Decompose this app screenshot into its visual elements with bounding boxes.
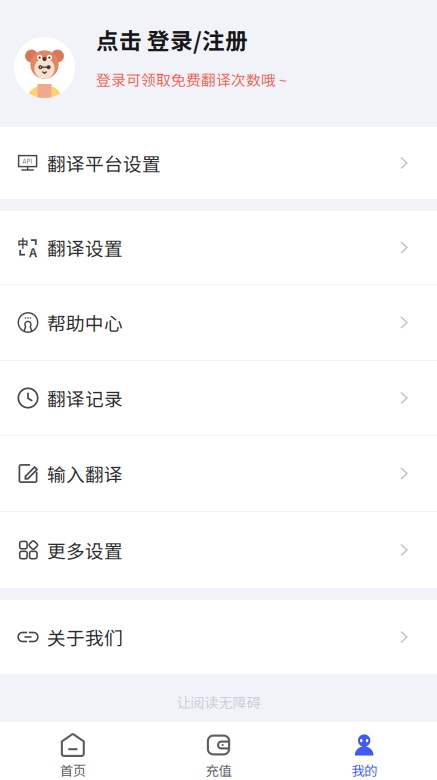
button[interactable]: 首页 — [0, 722, 146, 780]
staticText: 输入翻译 — [47, 460, 123, 487]
button[interactable]: 翻译记录 — [0, 361, 437, 435]
staticText: 翻译记录 — [47, 384, 123, 411]
staticText: 让阅读无障碍 — [176, 692, 260, 712]
staticText: 翻译平台设置 — [47, 149, 161, 176]
staticText: 关于我们 — [47, 623, 123, 650]
staticText: API — [23, 157, 33, 166]
button[interactable]: 输入翻译 — [0, 436, 437, 511]
staticText: 中 — [17, 235, 28, 251]
button[interactable]: 中 — [0, 211, 437, 284]
button[interactable]: 点击 登录/注册 — [0, 0, 437, 127]
staticText: 更多设置 — [47, 536, 123, 563]
button[interactable]: 关于我们 — [0, 600, 437, 674]
button[interactable]: API — [0, 127, 437, 199]
staticText: 我的 — [351, 760, 377, 780]
button[interactable]: 更多设置 — [0, 512, 437, 588]
staticText: 翻译设置 — [47, 234, 123, 261]
staticText: A — [29, 243, 37, 261]
staticText: 帮助中心 — [47, 309, 123, 336]
staticText: 充值 — [205, 760, 231, 780]
button[interactable]: 帮助中心 — [0, 285, 437, 360]
button[interactable]: 充值 — [146, 722, 291, 780]
staticText: 首页 — [60, 760, 86, 780]
staticText: 点击 登录/注册 — [96, 23, 248, 56]
button[interactable]: 我的 — [291, 722, 437, 780]
staticText: 登录可领取免费翻译次数哦 ~ — [96, 69, 287, 90]
